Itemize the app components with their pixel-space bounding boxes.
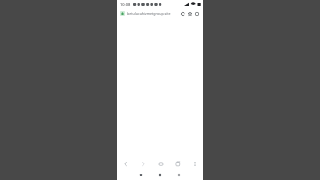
button[interactable]: Back — [175, 171, 183, 179]
button[interactable]: Recent apps — [137, 171, 145, 179]
button[interactable]: Bookmark — [186, 10, 193, 17]
button[interactable]: Home — [156, 171, 164, 179]
button[interactable]: More options — [193, 10, 200, 17]
button[interactable]: betulucuhizmetgroup.site — [127, 8, 178, 18]
button[interactable]: Site information — [120, 11, 125, 16]
staticText: betulucuhizmetgroup.site — [127, 11, 171, 16]
button[interactable]: Reload — [179, 10, 186, 17]
button[interactable]: Menu — [189, 158, 200, 169]
button[interactable]: Tabs — [172, 158, 183, 169]
button[interactable]: Back — [120, 158, 131, 169]
staticText: 10:08 — [120, 2, 131, 7]
button[interactable]: Home — [155, 158, 166, 169]
button[interactable]: Forward — [137, 158, 148, 169]
